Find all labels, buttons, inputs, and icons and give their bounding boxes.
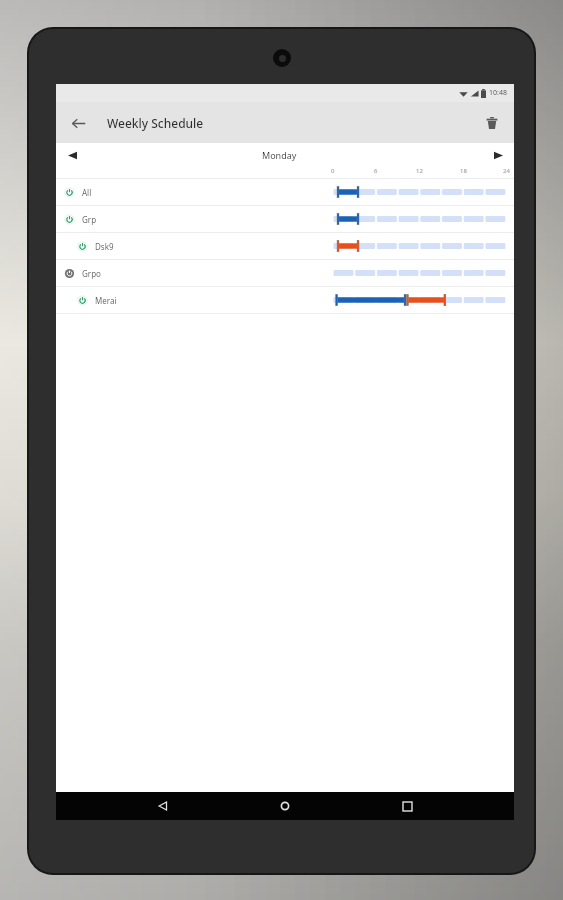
button[interactable]: Home: [270, 792, 300, 820]
button[interactable]: Next day: [488, 145, 508, 165]
staticText: 12: [416, 167, 423, 175]
button[interactable]: Recents: [392, 792, 422, 820]
staticText: 6: [374, 167, 378, 175]
button[interactable]: Back: [61, 106, 95, 140]
staticText: Grp: [82, 214, 97, 225]
staticText: Grpo: [82, 268, 101, 279]
staticText: Dsk9: [95, 241, 114, 252]
button[interactable]: Previous day: [62, 145, 82, 165]
staticText: 0: [331, 167, 335, 175]
staticText: 10:48: [489, 88, 507, 98]
button[interactable]: Dsk9: [56, 233, 514, 260]
staticText: Monday: [262, 149, 297, 161]
staticText: Merai: [95, 295, 117, 306]
button[interactable]: Merai: [56, 287, 514, 314]
staticText: Weekly Schedule: [107, 115, 204, 131]
staticText: 18: [460, 167, 467, 175]
button[interactable]: Delete: [477, 108, 507, 138]
button[interactable]: All: [56, 179, 514, 206]
button[interactable]: Back: [148, 792, 178, 820]
staticText: 24: [503, 167, 510, 175]
button[interactable]: Grp: [56, 206, 514, 233]
button[interactable]: Grpo: [56, 260, 514, 287]
staticText: All: [82, 187, 92, 198]
